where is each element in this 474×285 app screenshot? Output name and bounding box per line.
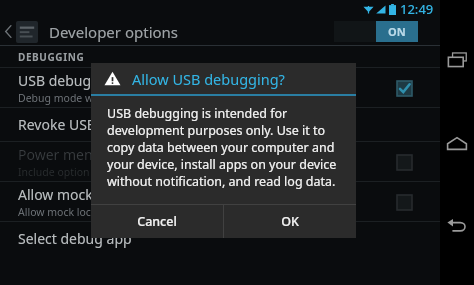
staticText: Revoke USB debugging authorizations [18, 115, 271, 134]
staticText: Developer options [49, 22, 179, 42]
button[interactable]: Cancel [91, 205, 223, 238]
staticText: USB debugging is intended for developmen… [107, 105, 342, 190]
staticText: Allow mock locations [18, 205, 122, 219]
button[interactable]: Allow mock locations [0, 182, 440, 221]
staticText: Allow USB debugging? [132, 69, 285, 89]
staticText: Debug mode when USB is connected [18, 91, 200, 105]
staticText: Cancel [137, 213, 177, 230]
button[interactable]: USB debugging [0, 68, 440, 107]
staticText: Power menu bug report [18, 145, 176, 164]
staticText: Allow mock locations [18, 185, 156, 204]
staticText: OK [281, 213, 299, 230]
button[interactable]: Navigate up [0, 18, 42, 45]
button[interactable]: Revoke USB debugging authorizations [0, 108, 440, 141]
staticText: Select debug app [18, 229, 132, 248]
button[interactable]: Power menu bug report [0, 142, 440, 181]
button[interactable]: Toggle developer options [334, 21, 418, 42]
button[interactable]: Recent apps [440, 37, 474, 83]
staticText: ON [388, 24, 406, 39]
button[interactable]: Back [440, 202, 474, 248]
staticText: DEBUGGING [18, 50, 85, 64]
staticText: 12:49 [400, 0, 434, 18]
button[interactable]: Home [440, 120, 474, 166]
staticText: Include option in power menu [18, 165, 167, 179]
staticText: USB debugging [18, 71, 121, 90]
button[interactable]: OK [224, 205, 356, 238]
button[interactable]: Select debug app [0, 222, 440, 255]
